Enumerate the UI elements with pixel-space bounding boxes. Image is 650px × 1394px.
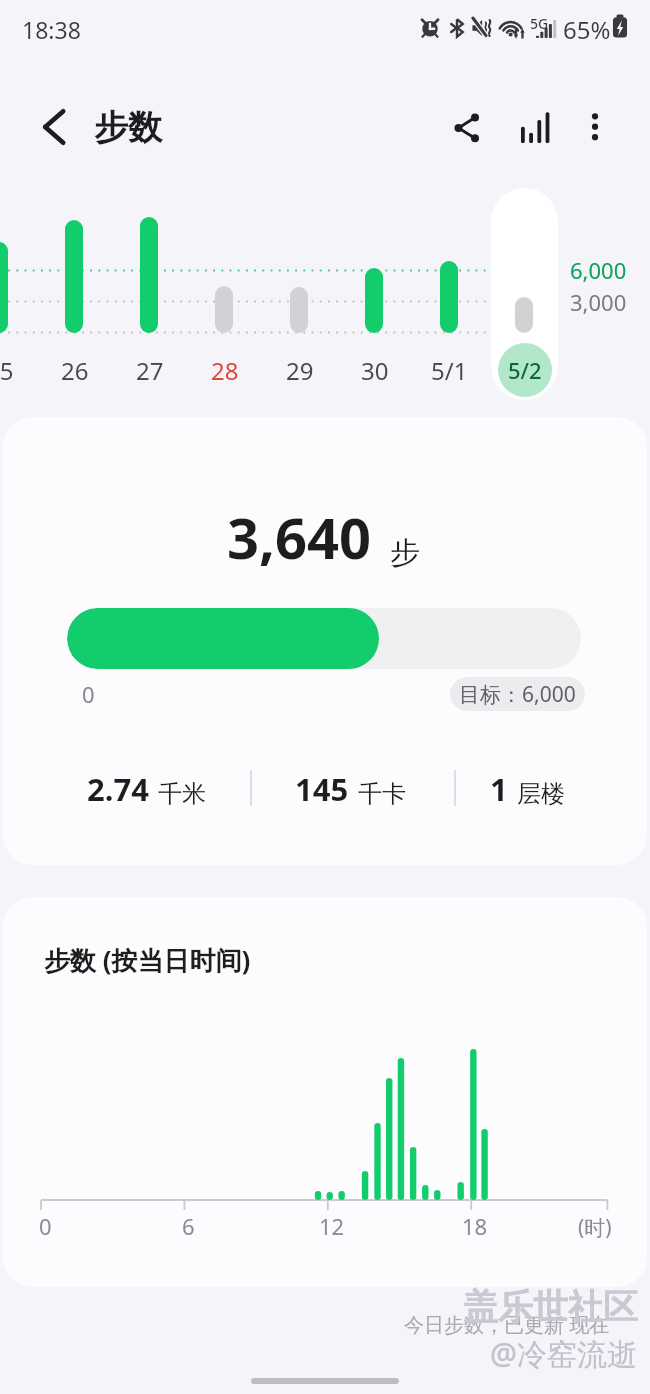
button[interactable]: 145 — [295, 768, 406, 810]
staticText: 0 — [39, 1211, 52, 1241]
staticText: 5G — [530, 14, 549, 33]
staticText: 2.74 — [87, 768, 149, 810]
staticText: 25 — [0, 354, 14, 387]
staticText: 今日步数，已更新 现在 — [404, 1311, 610, 1338]
staticText: 6 — [182, 1211, 195, 1241]
button[interactable]: 29 — [262, 348, 337, 392]
staticText: 18:38 — [22, 14, 81, 45]
staticText: 145 — [295, 768, 349, 810]
staticText: 目标：6,000 — [459, 680, 576, 709]
button[interactable]: Statistics — [508, 100, 562, 154]
button[interactable]: Back — [30, 103, 78, 151]
staticText: 步数 (按当日时间) — [44, 942, 251, 978]
button[interactable]: More options — [568, 100, 622, 154]
staticText: 12 — [319, 1211, 345, 1241]
button[interactable]: 27 — [112, 348, 187, 392]
staticText: 盖乐世社区 — [463, 1285, 638, 1329]
staticText: 6,000 — [570, 255, 627, 285]
button[interactable] — [67, 608, 581, 669]
button[interactable]: 1 — [490, 768, 565, 810]
staticText: 28 — [211, 354, 239, 387]
staticText: 27 — [136, 354, 164, 387]
staticText: 29 — [286, 354, 314, 387]
staticText: 步 — [390, 534, 420, 572]
button[interactable]: 5/1 — [412, 348, 487, 392]
staticText: 3,640 — [227, 499, 372, 575]
staticText: 18 — [462, 1211, 488, 1241]
button[interactable]: Selected day 5/2 — [491, 188, 558, 400]
button[interactable]: 28 — [187, 348, 262, 392]
button[interactable]: 目标：6,000 — [450, 677, 585, 711]
staticText: 5/2 — [508, 355, 542, 385]
staticText: 65% — [563, 13, 611, 46]
staticText: 26 — [61, 354, 89, 387]
staticText: 0 — [82, 679, 95, 709]
staticText: 30 — [361, 354, 389, 387]
staticText: @冷窑流逝 — [490, 1333, 637, 1374]
staticText: 3,000 — [570, 287, 627, 317]
staticText: 千米 — [158, 779, 206, 809]
button[interactable]: 25 — [0, 348, 37, 392]
button[interactable]: 2.74 — [87, 768, 206, 810]
staticText: 步数 — [94, 106, 162, 149]
staticText: 千卡 — [358, 779, 406, 809]
staticText: 1 — [490, 768, 508, 810]
button[interactable]: Share — [441, 100, 495, 154]
button[interactable]: 5/2 — [498, 343, 552, 397]
button[interactable]: 26 — [37, 348, 112, 392]
button[interactable]: 30 — [337, 348, 412, 392]
staticText: (时) — [578, 1213, 612, 1242]
staticText: 层楼 — [517, 779, 565, 809]
staticText: 5/1 — [431, 354, 468, 387]
